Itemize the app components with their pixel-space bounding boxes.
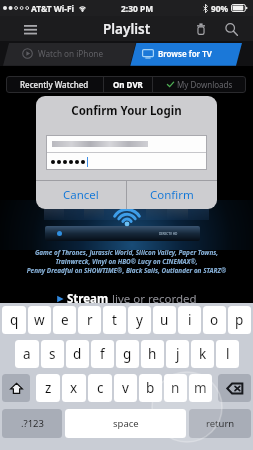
staticText: e [61,311,69,329]
staticText: g [123,345,132,363]
button[interactable]: o [203,306,226,334]
button[interactable]: Delete [191,19,211,39]
staticText: y [136,311,143,329]
staticText: On DVR [113,79,143,90]
button[interactable]: m [189,374,212,402]
staticText: z [45,379,52,397]
staticText: AT&T Wi-Fi [31,3,75,14]
staticText: u [160,311,169,329]
button[interactable]: a [15,340,39,368]
button[interactable]: e [53,306,76,334]
button[interactable]: return [189,409,251,438]
staticText: Playlist [103,20,151,38]
staticText: return [206,417,235,430]
button[interactable]: space [65,409,186,438]
staticText: Penny Dreadful on SHOWTIME®, Black Sails… [0,266,253,275]
staticText: x [70,379,78,397]
button[interactable]: d [66,340,89,368]
button[interactable]: v [114,374,137,402]
button[interactable]: y [128,306,151,334]
staticText: c [97,379,104,397]
button[interactable]: t [103,306,126,334]
staticText: m [194,379,207,397]
button[interactable]: r [78,306,101,334]
staticText: Watch on iPhone [38,48,104,59]
button[interactable]: q [2,306,26,334]
staticText: Recently Watched [20,79,89,90]
button[interactable]: f [91,340,114,368]
staticText: l [226,345,230,363]
button[interactable]: Cancel [36,181,126,209]
button[interactable]: .?123 [2,409,62,438]
button[interactable]: Backspace [218,374,251,402]
staticText: Confirm [150,187,194,203]
staticText: 90% [211,3,229,14]
button[interactable]: c [88,374,112,402]
staticText: j [176,345,180,363]
button[interactable]: b [139,374,162,402]
staticText: h [148,345,157,363]
staticText: space [113,417,139,430]
button[interactable]: z [36,374,60,402]
staticText: w [34,311,45,329]
button[interactable]: x [62,374,86,402]
button[interactable]: Confirm [127,181,217,209]
staticText: My Downloads [177,79,233,90]
button[interactable]: Search [221,19,241,39]
button[interactable]: s [41,340,64,368]
staticText: p [235,311,244,329]
button[interactable]: i [178,306,201,334]
staticText: v [122,379,129,397]
staticText: DIRECTV HD [159,232,178,236]
button[interactable]: l [216,340,239,368]
button[interactable]: j [166,340,189,368]
button[interactable]: g [116,340,139,368]
staticText: Stream [67,291,109,307]
button[interactable]: k [191,340,214,368]
button[interactable]: p [228,306,251,334]
staticText: i [188,311,192,329]
staticText: .?123 [21,417,44,430]
button[interactable]: u [153,306,176,334]
staticText: t [112,311,117,329]
staticText: Confirm Your Login [36,103,217,119]
button[interactable]: h [141,340,164,368]
staticText: r [87,311,93,329]
staticText: s [49,345,56,363]
staticText: d [73,345,82,363]
staticText: 2:30 PM [121,3,154,14]
button[interactable]: Recently Watched [6,76,103,93]
staticText: k [199,345,207,363]
staticText: live or recorded [112,291,197,307]
staticText: q [10,311,19,329]
staticText: Cancel [63,187,99,203]
button[interactable]: Menu [19,18,41,40]
staticText: a [23,345,31,363]
staticText: n [171,379,180,397]
button[interactable]: w [28,306,51,334]
button[interactable]: n [164,374,187,402]
button[interactable]: On DVR [104,76,152,93]
staticText: o [210,311,219,329]
staticText: Trainwreck, Vinyl on HBO® Lucy on CINEMA… [0,257,253,266]
button[interactable]: My Downloads [153,76,246,93]
staticText: b [146,379,155,397]
staticText: Game of Thrones, Jurassic World, Silicon… [0,248,253,257]
staticText: Browse for TV [158,48,212,59]
button[interactable]: Shift [2,374,30,402]
staticText: f [100,345,105,363]
